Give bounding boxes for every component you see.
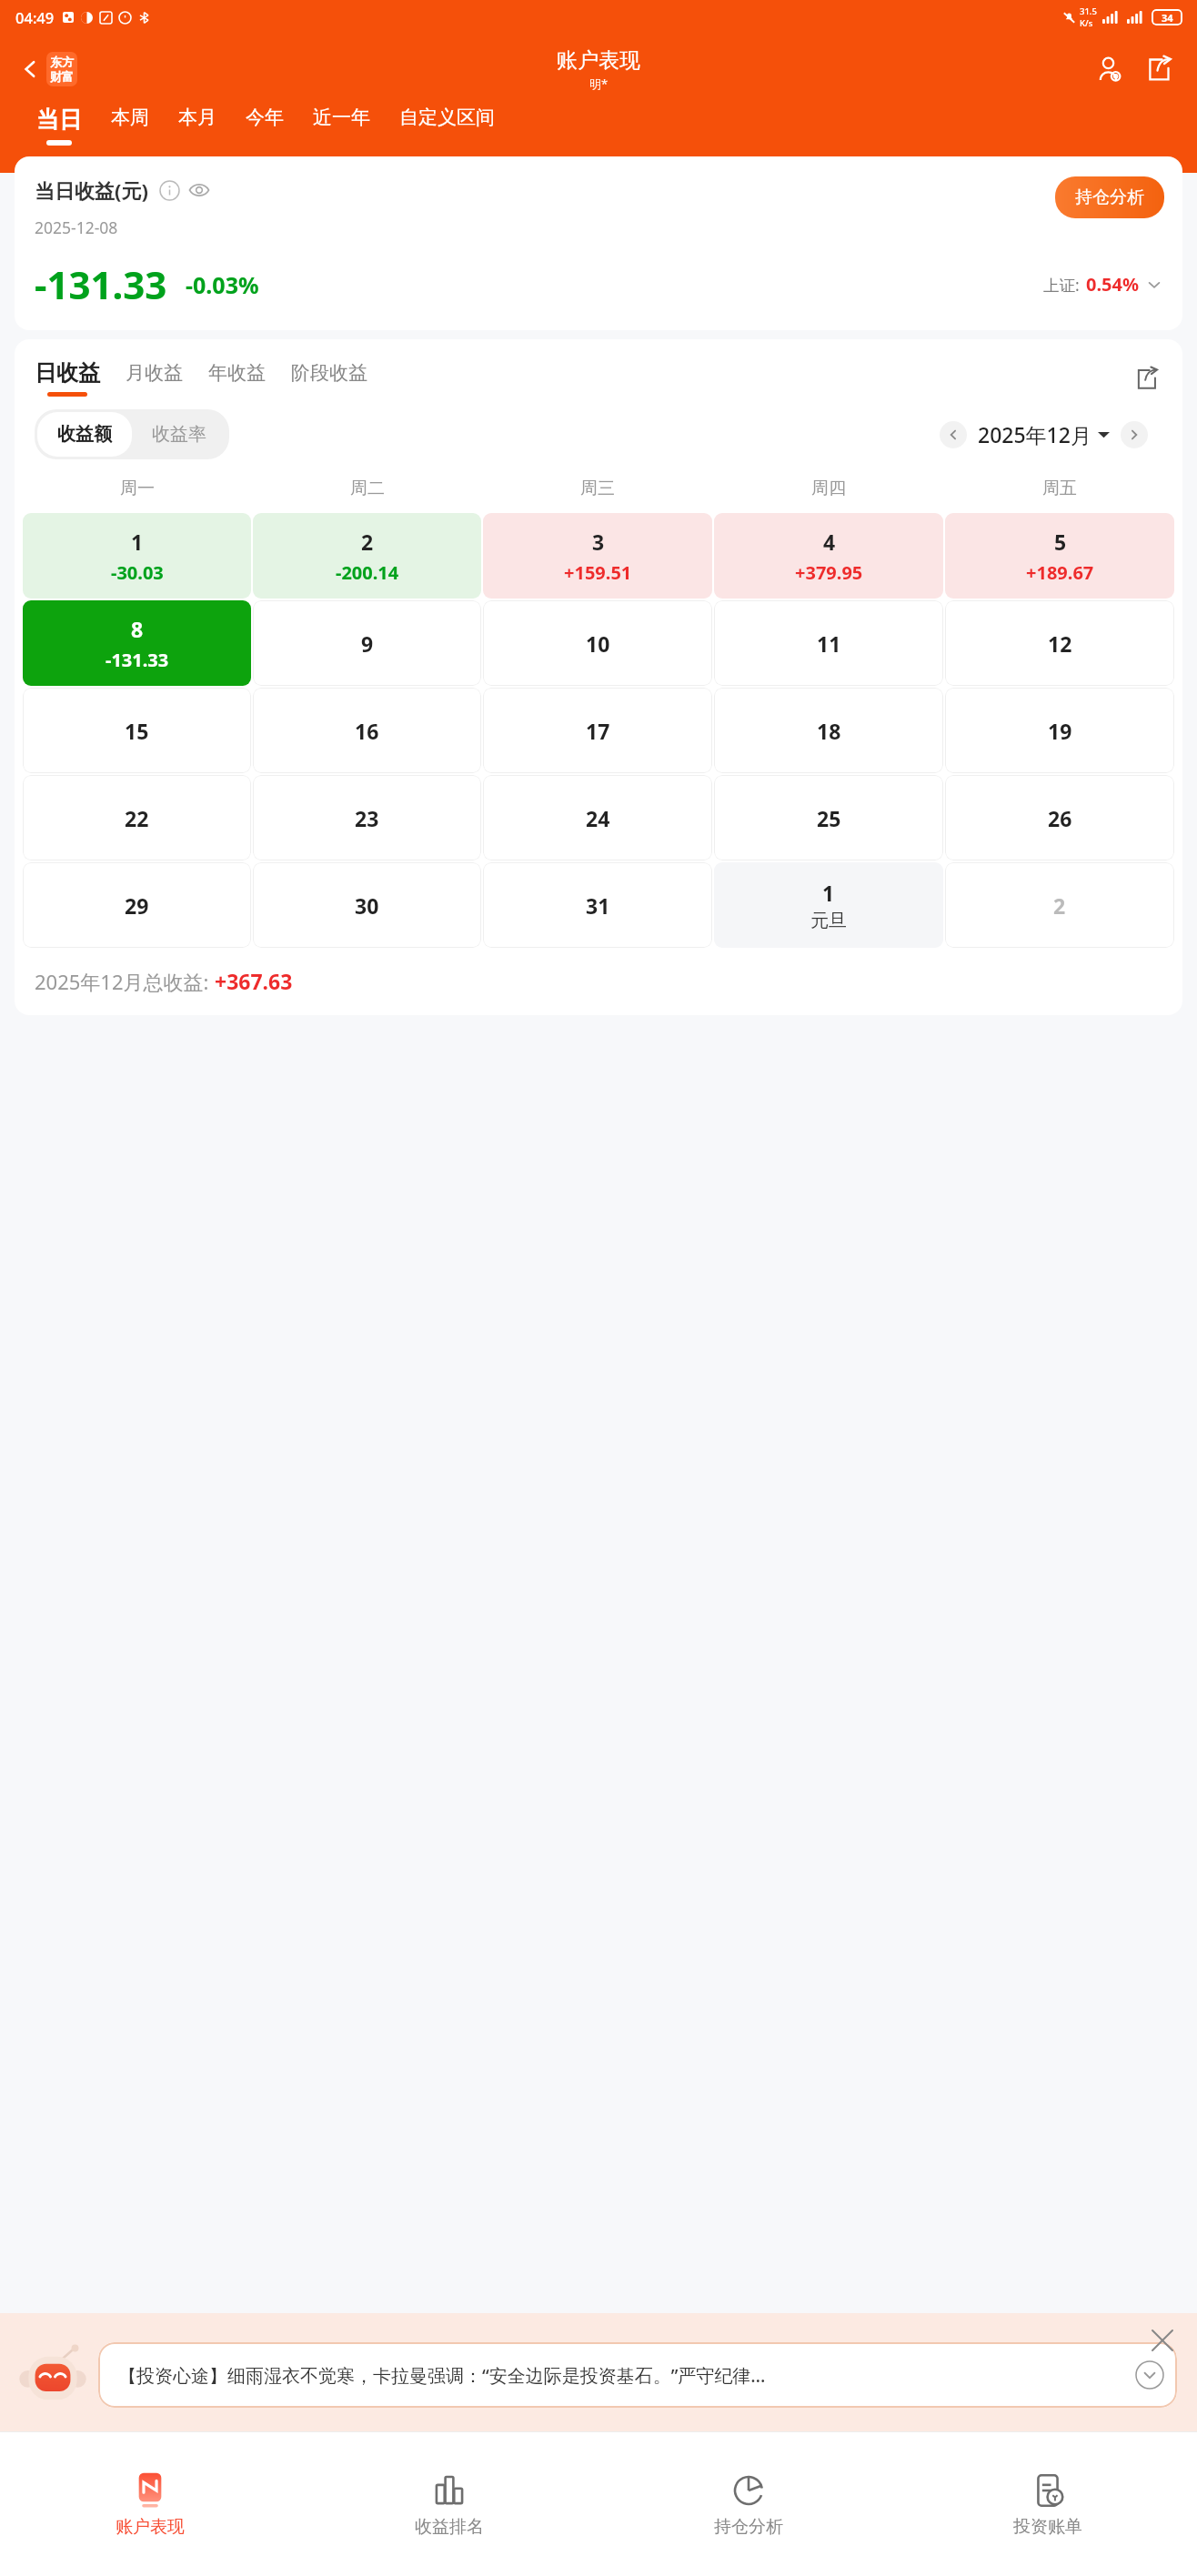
staticText: 持仓分析	[714, 2516, 783, 2538]
button[interactable]: 5	[945, 513, 1174, 599]
button[interactable]: Close	[1144, 2322, 1181, 2359]
staticText: 11	[817, 629, 841, 658]
button[interactable]: 23	[253, 775, 481, 860]
button[interactable]: 19	[945, 688, 1174, 773]
button[interactable]: Info	[157, 178, 181, 202]
staticText: 16	[355, 717, 379, 745]
button[interactable]: 18	[714, 688, 943, 773]
staticText: 投资账单	[1013, 2516, 1082, 2538]
button[interactable]: 2025年12月	[978, 420, 1110, 448]
staticText: 0.54%	[1086, 272, 1139, 297]
button[interactable]: 近一年	[298, 104, 385, 143]
staticText: 2	[1053, 891, 1066, 920]
staticText: 近一年	[313, 106, 370, 129]
staticText: K/s	[1080, 17, 1093, 29]
staticText: -131.33	[106, 648, 169, 672]
button[interactable]: 9	[253, 600, 481, 686]
staticText: 19	[1048, 717, 1072, 745]
staticText: 31.5	[1080, 5, 1097, 17]
button[interactable]: 本周	[96, 104, 164, 143]
button[interactable]: 持仓分析	[598, 2432, 898, 2576]
button[interactable]: 今年	[231, 104, 298, 143]
staticText: 23	[355, 804, 379, 832]
button[interactable]: 收益额	[37, 412, 132, 457]
button[interactable]: 8	[23, 600, 251, 686]
button[interactable]: 年收益	[196, 361, 278, 395]
staticText: 周五	[1042, 478, 1077, 499]
button[interactable]: Toggle visibility	[186, 177, 212, 203]
button[interactable]: 1	[714, 862, 943, 948]
staticText: 15	[125, 717, 149, 745]
button[interactable]: 收益率	[132, 412, 226, 457]
staticText: 周四	[811, 478, 846, 499]
staticText: 34	[1162, 11, 1173, 25]
button[interactable]: 2	[253, 513, 481, 599]
button[interactable]: 16	[253, 688, 481, 773]
button[interactable]: Previous month	[940, 421, 967, 448]
button[interactable]: 29	[23, 862, 251, 948]
button[interactable]: 收益排名	[299, 2432, 598, 2576]
button[interactable]: Account	[1090, 49, 1130, 89]
button[interactable]: Back	[13, 46, 83, 92]
button[interactable]: 当日	[22, 104, 96, 147]
staticText: -30.03	[111, 560, 164, 585]
staticText: 1	[131, 528, 144, 556]
button[interactable]: 24	[483, 775, 712, 860]
button[interactable]: 阶段收益	[278, 361, 380, 395]
staticText: 2025年12月	[978, 420, 1091, 448]
button[interactable]: Share	[1139, 49, 1179, 89]
staticText: 04:49	[15, 7, 55, 27]
staticText: 周三	[580, 478, 615, 499]
button[interactable]: 日收益	[35, 359, 100, 397]
staticText: +379.95	[795, 560, 863, 585]
staticText: 29	[125, 891, 149, 920]
button[interactable]: 10	[483, 600, 712, 686]
button[interactable]: 持仓分析	[1055, 176, 1164, 218]
staticText: 今年	[246, 106, 284, 129]
staticText: 持仓分析	[1075, 186, 1144, 208]
staticText: 日收益	[35, 359, 100, 387]
button[interactable]: 3	[483, 513, 712, 599]
button[interactable]: 投资账单	[898, 2432, 1197, 2576]
button[interactable]: 【投资心途】细雨湿衣不觉寒，卡拉曼强调：“安全边际是投资基石。”严守纪律…	[98, 2342, 1177, 2408]
staticText: 31	[586, 891, 610, 920]
staticText: +367.63	[215, 967, 293, 995]
button[interactable]: 17	[483, 688, 712, 773]
button[interactable]: 月收益	[113, 361, 196, 395]
staticText: 18	[817, 717, 841, 745]
staticText: 自定义区间	[399, 106, 495, 129]
button[interactable]: 1	[23, 513, 251, 599]
staticText: 当日收益(元)	[35, 176, 148, 204]
button[interactable]: 22	[23, 775, 251, 860]
staticText: 26	[1048, 804, 1072, 832]
staticText: 阶段收益	[291, 361, 367, 385]
staticText: 财富	[50, 69, 74, 84]
staticText: -0.03%	[186, 269, 259, 300]
button[interactable]: 26	[945, 775, 1174, 860]
staticText: 30	[355, 891, 379, 920]
staticText: +189.67	[1026, 560, 1094, 585]
staticText: -200.14	[336, 560, 399, 585]
button[interactable]: 11	[714, 600, 943, 686]
staticText: 年收益	[208, 361, 266, 385]
button[interactable]: 2	[945, 862, 1174, 948]
button[interactable]: 30	[253, 862, 481, 948]
staticText: 东方	[50, 55, 74, 69]
staticText: 5	[1054, 528, 1067, 556]
button[interactable]: 4	[714, 513, 943, 599]
button[interactable]: 25	[714, 775, 943, 860]
staticText: 24	[586, 804, 610, 832]
button[interactable]: 上证:	[1043, 272, 1182, 297]
button[interactable]: 自定义区间	[385, 104, 509, 143]
staticText: 月收益	[126, 361, 183, 385]
button[interactable]: Share	[1128, 360, 1164, 397]
button[interactable]: 12	[945, 600, 1174, 686]
button[interactable]: 15	[23, 688, 251, 773]
button[interactable]: 31	[483, 862, 712, 948]
staticText: 10	[586, 629, 610, 658]
button[interactable]: Next month	[1121, 421, 1148, 448]
button[interactable]: 账户表现	[0, 2432, 299, 2576]
button[interactable]: 本月	[164, 104, 231, 143]
staticText: 收益率	[152, 423, 206, 446]
staticText: 【投资心途】细雨湿衣不觉寒，卡拉曼强调：“安全边际是投资基石。”严守纪律…	[118, 2363, 1124, 2388]
